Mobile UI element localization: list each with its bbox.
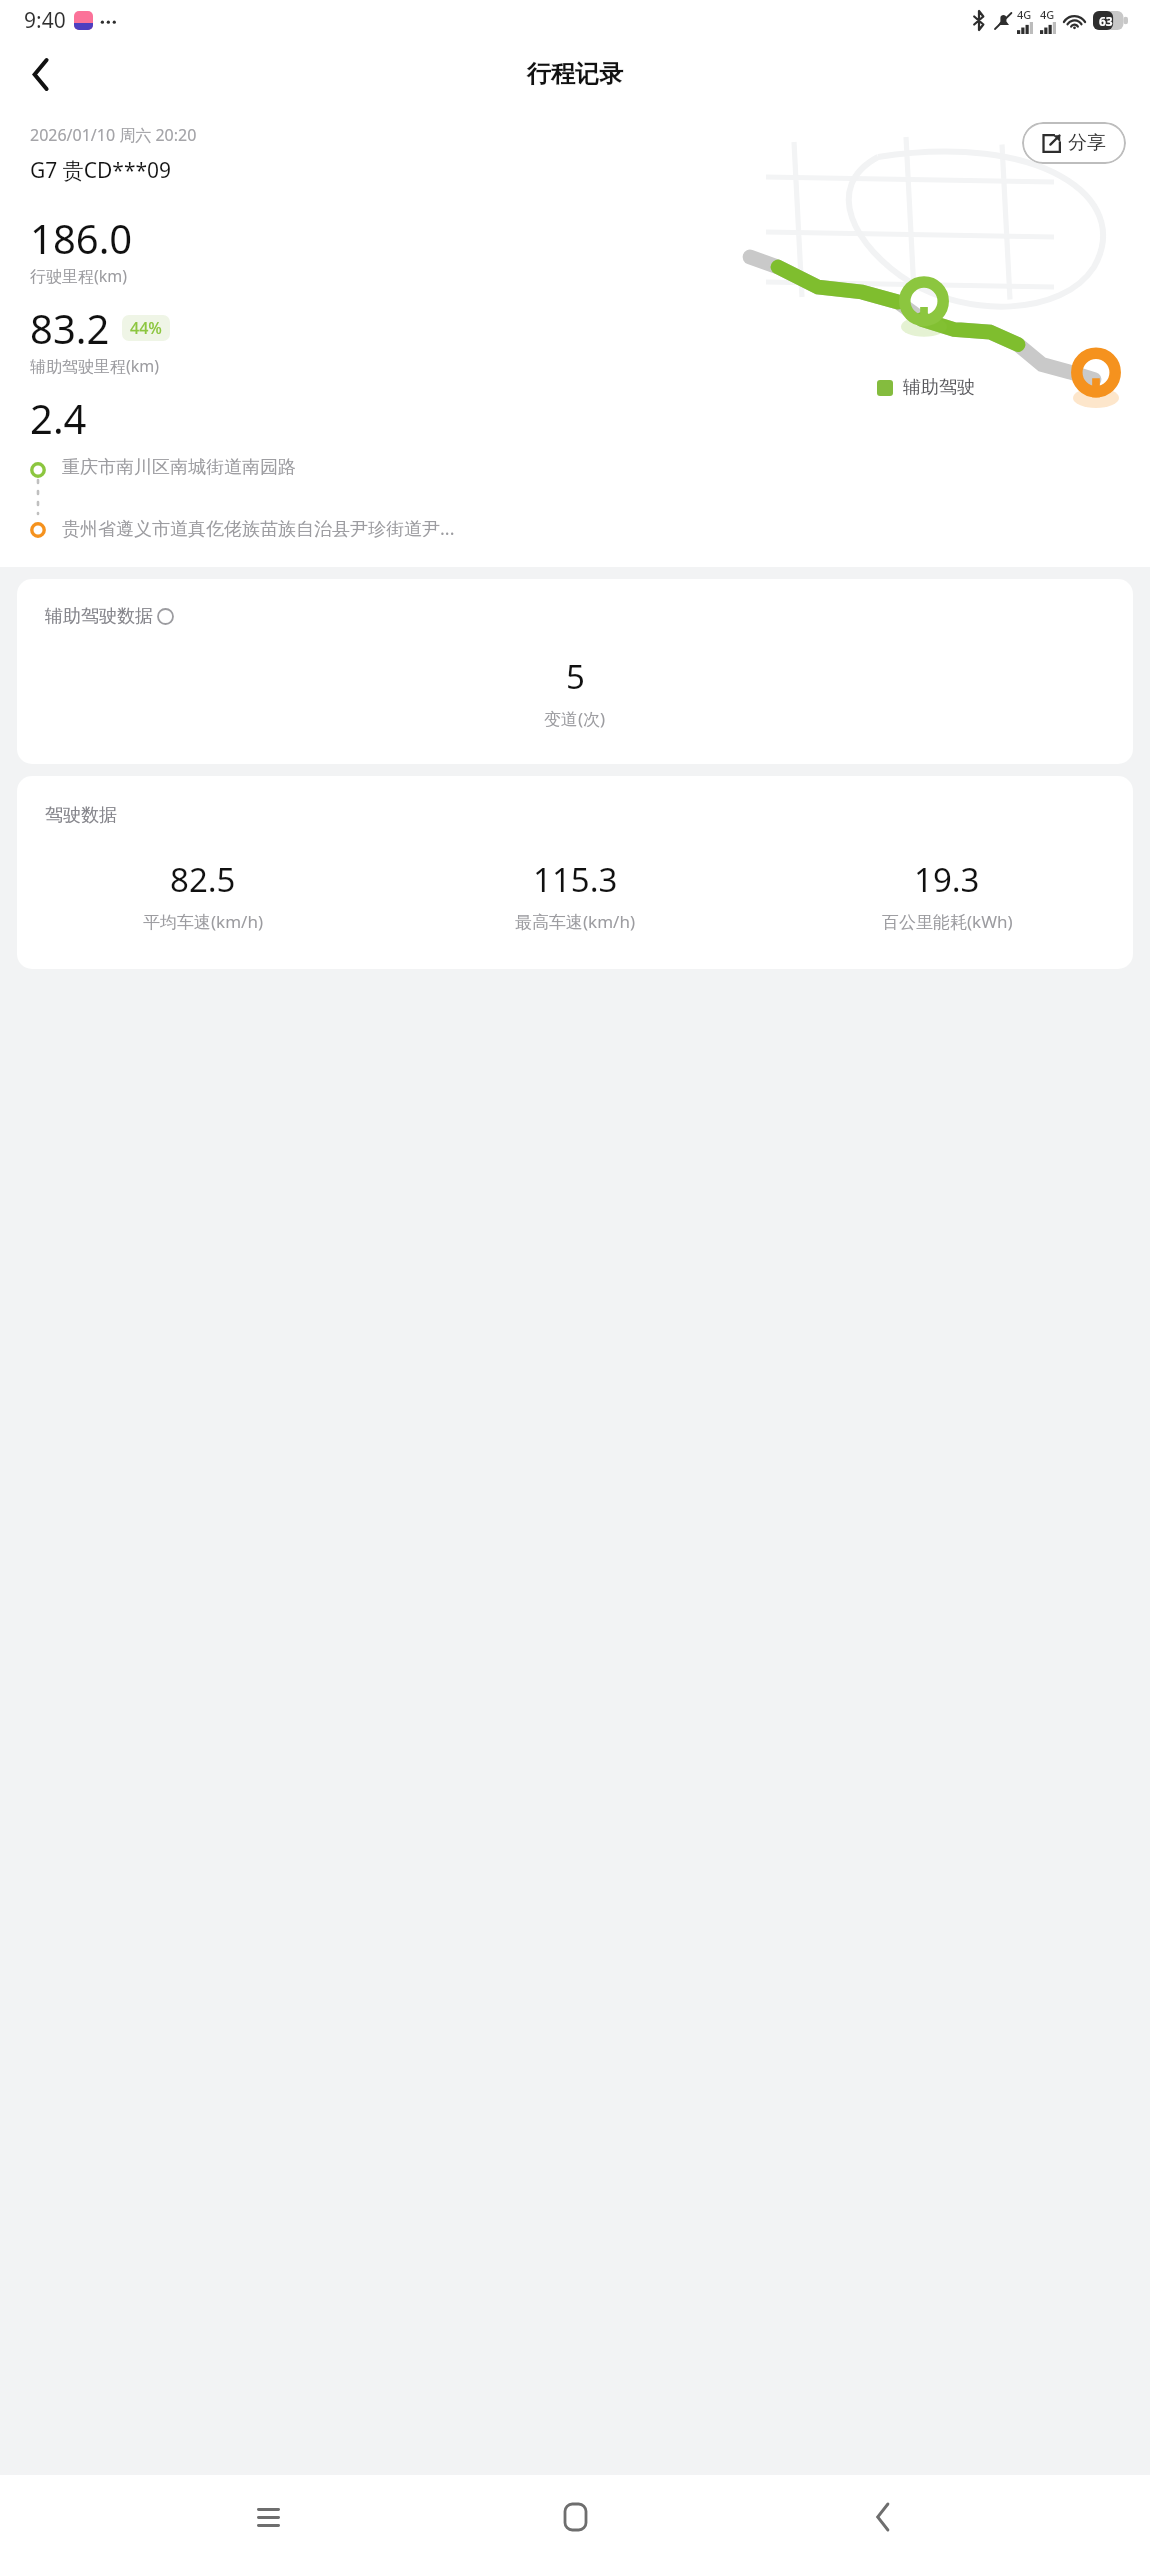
staticText: G7 贵CD***09	[30, 156, 172, 185]
staticText: 重庆市南川区南城街道南园路	[62, 456, 296, 479]
staticText: 186.0	[30, 211, 133, 265]
staticText: 最高车速(km/h)	[515, 910, 636, 933]
staticText: 分享	[1068, 131, 1106, 155]
staticText: 63	[1099, 13, 1113, 29]
staticText: 变道(次)	[544, 707, 606, 730]
staticText: 辅助驾驶数据	[45, 605, 153, 628]
button[interactable]: Recent apps	[228, 2477, 308, 2557]
staticText: 115.3	[533, 857, 618, 902]
staticText: 行驶里程(km)	[30, 265, 128, 287]
staticText: 平均车速(km/h)	[143, 910, 264, 933]
staticText: 辅助驾驶	[903, 376, 975, 399]
button[interactable]: 驾驶数据	[17, 776, 1133, 969]
staticText: 82.5	[170, 857, 236, 902]
staticText: 驾驶数据	[45, 804, 117, 827]
staticText: 19.3	[914, 857, 980, 902]
staticText: 9:40	[24, 6, 66, 35]
staticText: 辅助驾驶里程(km)	[30, 355, 160, 377]
staticText: 2026/01/10 周六 20:20	[30, 124, 197, 146]
staticText: 5	[566, 654, 585, 699]
button[interactable]: 分享	[1022, 122, 1126, 164]
staticText: 行程记录	[527, 59, 623, 89]
button[interactable]: 辅助驾驶数据	[17, 579, 1133, 764]
staticText: 44%	[130, 317, 162, 339]
staticText: 2.4	[30, 391, 87, 445]
staticText: 贵州省遵义市道真仡佬族苗族自治县尹珍街道尹...	[62, 516, 455, 541]
staticText: 4G	[1017, 7, 1032, 22]
button[interactable]: Back	[12, 45, 70, 103]
staticText: 4G	[1040, 7, 1055, 22]
button[interactable]: Back	[843, 2477, 923, 2557]
staticText: 83.2	[30, 301, 110, 355]
staticText: 百公里能耗(kWh)	[882, 910, 1013, 933]
button[interactable]: Home	[535, 2477, 615, 2557]
